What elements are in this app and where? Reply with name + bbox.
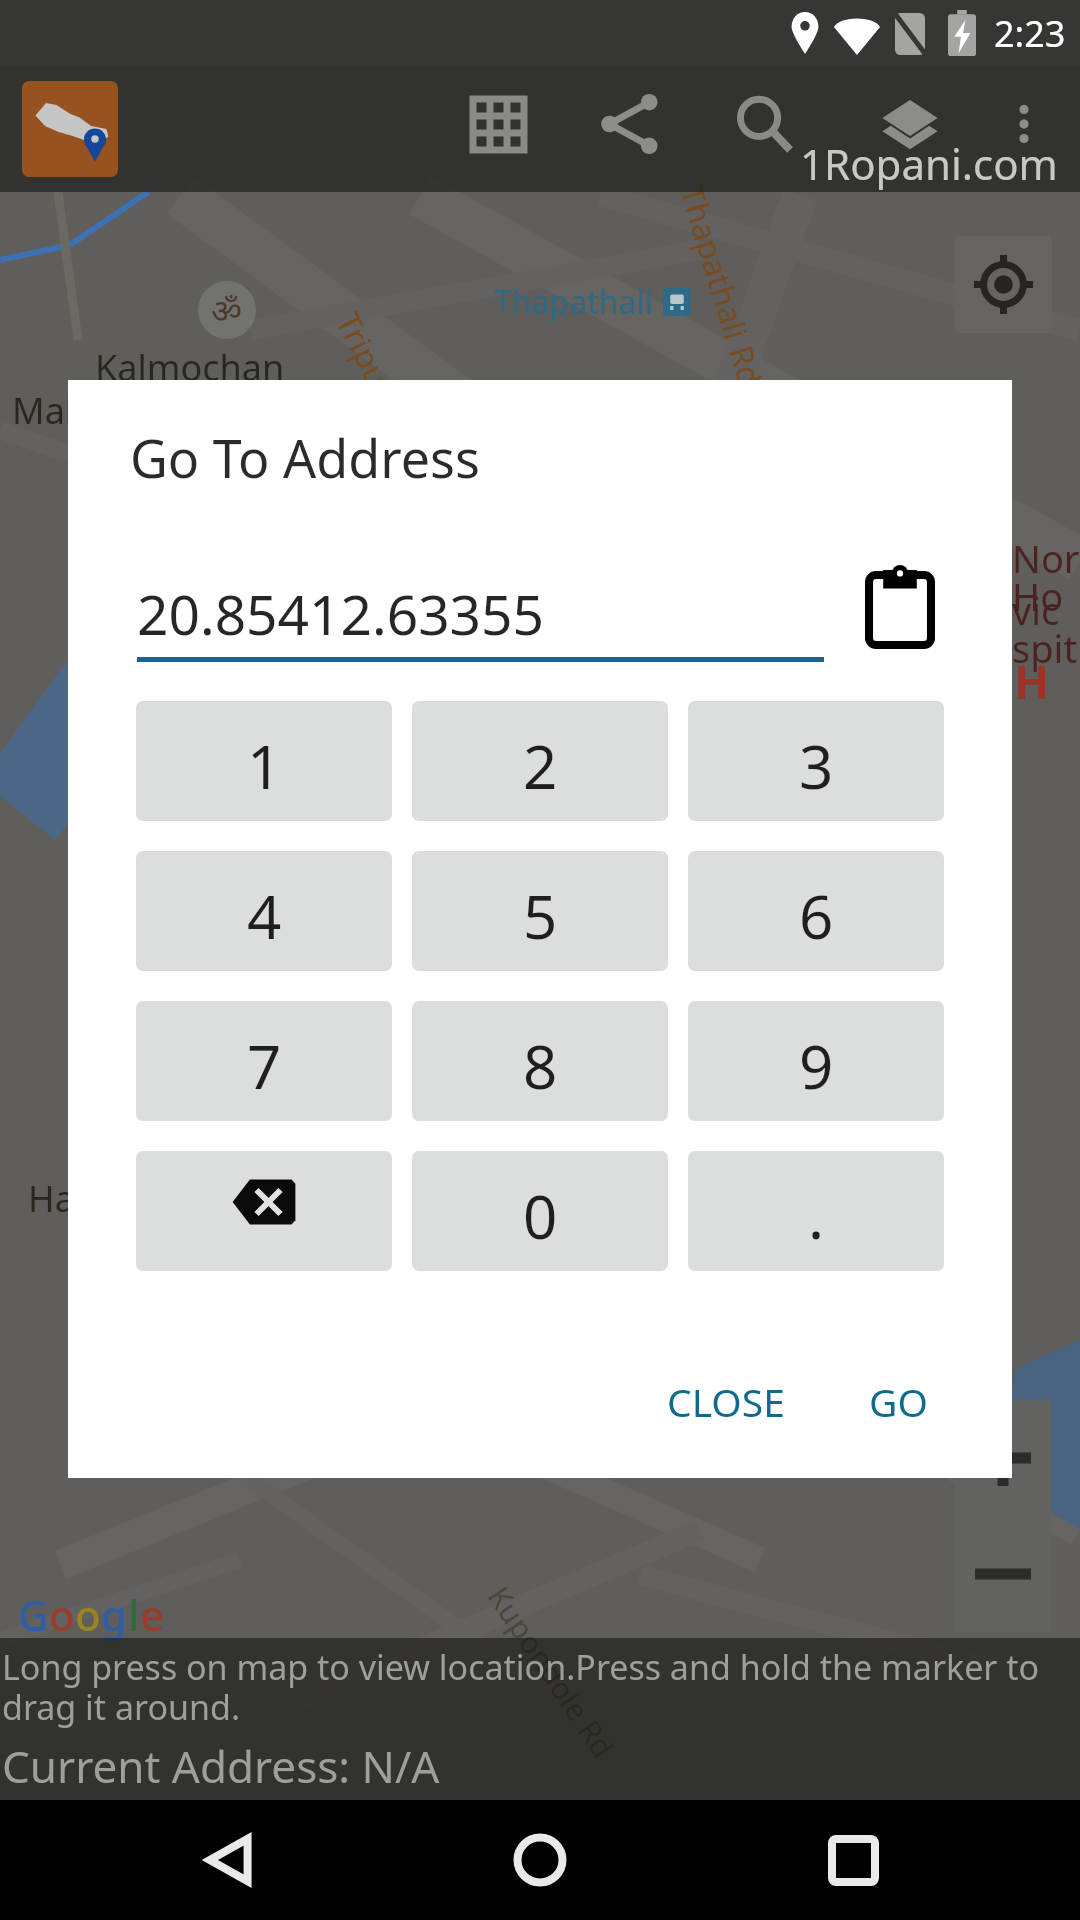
button[interactable]: 3: [688, 701, 944, 821]
staticText: 1: [247, 725, 282, 807]
button[interactable]: Share: [572, 66, 688, 182]
staticText: o: [75, 1586, 101, 1643]
staticText: o: [49, 1586, 75, 1643]
button[interactable]: 2: [412, 701, 668, 821]
staticText: Hospit: [1012, 570, 1080, 674]
staticText: Ha: [28, 1174, 75, 1223]
staticText: 1Ropani.com: [800, 135, 1058, 192]
staticText: 4: [247, 875, 282, 957]
staticText: 6: [799, 875, 834, 957]
staticText: 9: [799, 1025, 834, 1107]
button[interactable]: GO: [845, 1357, 952, 1446]
button[interactable]: Search: [706, 66, 822, 182]
staticText: GO: [869, 1375, 928, 1428]
button[interactable]: Back: [176, 1805, 286, 1915]
button[interactable]: 5: [412, 851, 668, 971]
staticText: Tripura M: [326, 305, 430, 455]
button[interactable]: App icon: [22, 81, 118, 177]
staticText: g: [101, 1586, 128, 1643]
button[interactable]: Recent apps: [798, 1805, 908, 1915]
staticText: l: [128, 1586, 140, 1643]
staticText: Go To Address: [130, 422, 480, 493]
button[interactable]: 6: [688, 851, 944, 971]
staticText: Kupondole Rd: [479, 1578, 624, 1766]
button[interactable]: Paste from clipboard: [850, 557, 950, 657]
staticText: 5: [523, 875, 558, 957]
staticText: ॐ: [211, 287, 243, 333]
button[interactable]: .: [688, 1151, 944, 1271]
button[interactable]: 7: [136, 1001, 392, 1121]
button[interactable]: Grid view: [440, 66, 556, 182]
staticText: 0: [523, 1175, 558, 1257]
staticText: CLOSE: [667, 1375, 785, 1428]
button[interactable]: 4: [136, 851, 392, 971]
staticText: Long press on map to view location.Press…: [2, 1644, 1080, 1730]
staticText: 2:23: [994, 9, 1066, 58]
button[interactable]: CLOSE: [643, 1357, 809, 1446]
staticText: 2: [523, 725, 558, 807]
staticText: Kalmochan: [95, 343, 285, 392]
staticText: Thapathali: [494, 280, 653, 324]
staticText: 3: [799, 725, 834, 807]
staticText: e: [140, 1586, 165, 1643]
staticText: Norvic: [1012, 532, 1080, 636]
staticText: Mah: [12, 386, 88, 435]
staticText: G: [18, 1586, 49, 1643]
staticText: H: [1014, 650, 1050, 713]
staticText: 8: [523, 1025, 558, 1107]
staticText: 20.85412.63355: [137, 576, 545, 651]
staticText: Thapathali Rd: [670, 180, 772, 391]
button[interactable]: 1: [136, 701, 392, 821]
button[interactable]: Layers: [852, 66, 968, 182]
button[interactable]: Backspace: [136, 1151, 392, 1271]
button[interactable]: 9: [688, 1001, 944, 1121]
staticText: Current Address: N/A: [2, 1736, 440, 1796]
button[interactable]: More options: [967, 66, 1080, 182]
button[interactable]: Home: [485, 1805, 595, 1915]
staticText: 7: [247, 1025, 282, 1107]
button[interactable]: 8: [412, 1001, 668, 1121]
staticText: .: [808, 1175, 825, 1257]
button[interactable]: 0: [412, 1151, 668, 1271]
button[interactable]: My location: [955, 236, 1052, 333]
